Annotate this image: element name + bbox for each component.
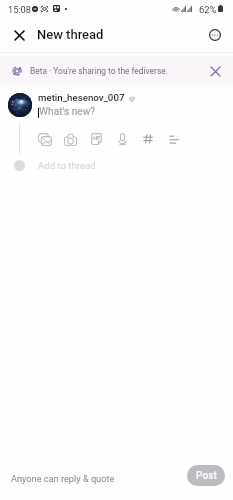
button[interactable]: Add photo	[36, 130, 54, 148]
staticText: metin_hesenov_007	[38, 92, 125, 103]
button[interactable]: Add tag	[139, 130, 157, 148]
button[interactable]: Add to thread	[38, 160, 96, 171]
button[interactable]: Dismiss banner	[206, 62, 224, 80]
staticText: Post	[196, 470, 217, 482]
staticText: Beta · You're sharing to the fediverse.	[30, 66, 168, 76]
button[interactable]: Post	[187, 465, 225, 486]
staticText: What's new?	[39, 106, 96, 118]
button[interactable]: Record audio	[113, 130, 131, 148]
button[interactable]: Camera	[61, 130, 79, 148]
staticText: 62%	[199, 4, 217, 15]
staticText: New thread	[37, 27, 104, 42]
staticText: Anyone can reply & quote	[11, 473, 115, 484]
staticText: 15:08	[8, 4, 31, 15]
button[interactable]: Close	[8, 24, 30, 46]
button[interactable]: Anyone can reply & quote	[6, 469, 120, 488]
button[interactable]: GIF	[87, 130, 105, 148]
button[interactable]: More options	[206, 26, 224, 44]
button[interactable]: Create poll	[165, 130, 183, 148]
